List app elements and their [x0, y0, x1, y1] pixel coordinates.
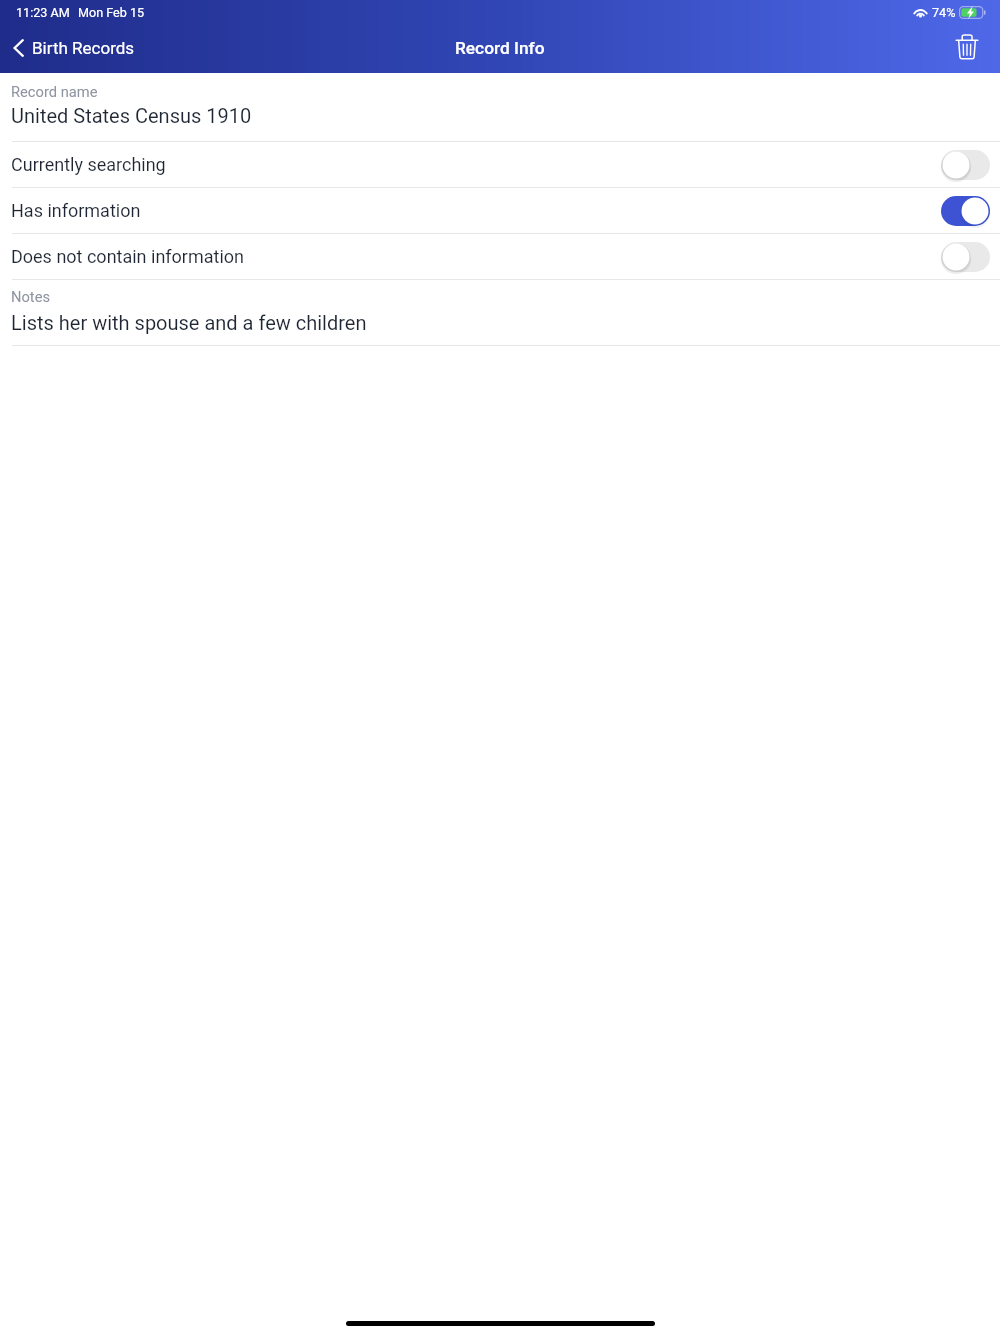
staticText: 11:23 AM	[16, 5, 70, 20]
button[interactable]: Delete record	[941, 28, 1000, 70]
staticText: United States Census 1910	[11, 104, 252, 127]
button[interactable]: Record name	[0, 73, 1000, 141]
button[interactable]: Currently searching	[0, 142, 1000, 187]
button[interactable]: Disabled	[941, 150, 990, 180]
button[interactable]: Enabled	[941, 196, 990, 226]
staticText: Currently searching	[11, 154, 166, 175]
staticText: Mon Feb 15	[78, 5, 145, 20]
button[interactable]: Birth Records	[0, 30, 147, 68]
staticText: Does not contain information	[11, 246, 245, 267]
button[interactable]: Has information	[0, 188, 1000, 233]
staticText: 74%	[932, 5, 956, 20]
staticText: Notes	[11, 288, 51, 305]
staticText: Record Info	[455, 38, 545, 58]
button[interactable]: Disabled	[941, 242, 990, 272]
staticText: Record name	[11, 83, 98, 100]
staticText: Lists her with spouse and a few children	[11, 311, 367, 334]
button[interactable]: Notes	[0, 280, 1000, 345]
staticText: Has information	[11, 200, 141, 221]
staticText: Birth Records	[32, 38, 135, 58]
button[interactable]: Does not contain information	[0, 234, 1000, 279]
